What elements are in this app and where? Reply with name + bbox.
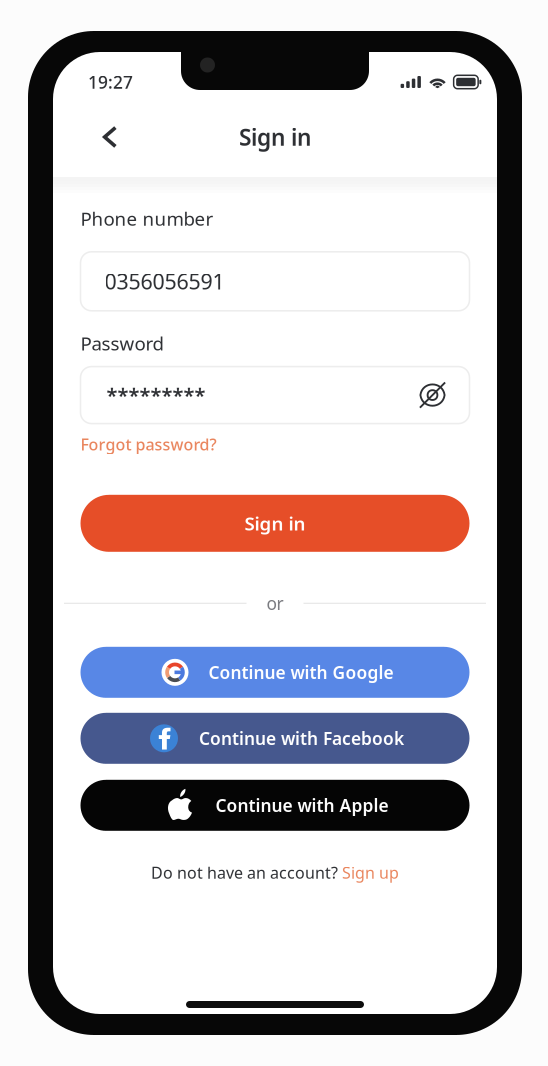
staticText: Continue with Apple	[215, 794, 388, 817]
staticText: Continue with Facebook	[199, 727, 404, 750]
button[interactable]: Forgot password?	[80, 434, 216, 455]
staticText: or	[266, 592, 283, 615]
staticText: Password	[80, 331, 163, 356]
button[interactable]: Back	[88, 115, 132, 159]
staticText: Forgot password?	[80, 434, 216, 455]
staticText: 0356056591	[104, 267, 224, 295]
staticText: Do not have an account?	[151, 862, 342, 883]
staticText: Continue with Google	[208, 661, 393, 684]
staticText: *********	[106, 382, 205, 408]
staticText: Sign in	[239, 122, 311, 152]
staticText: 19:27	[88, 70, 133, 93]
button[interactable]: Do not have an account?	[151, 862, 399, 883]
button[interactable]: Continue with Facebook	[80, 713, 469, 764]
staticText: Sign in	[244, 511, 305, 536]
button[interactable]: Show password	[412, 375, 452, 415]
staticText: Phone number	[80, 206, 213, 231]
staticText: Sign up	[342, 862, 399, 883]
button[interactable]: Continue with Google	[80, 647, 469, 698]
button[interactable]: Sign in	[80, 495, 469, 552]
button[interactable]: Continue with Apple	[80, 780, 469, 831]
